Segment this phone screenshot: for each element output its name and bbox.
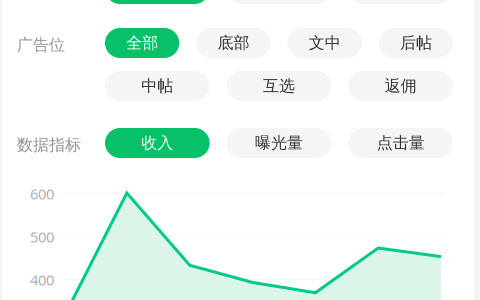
staticText: 500: [30, 227, 54, 246]
staticText: 数据指标: [17, 135, 81, 155]
button[interactable]: [348, 0, 453, 4]
staticText: 广告位: [17, 35, 65, 55]
button[interactable]: 底部: [196, 28, 270, 58]
button[interactable]: 互选: [227, 71, 331, 101]
staticText: 文中: [309, 33, 341, 53]
button[interactable]: 曝光量: [227, 128, 331, 158]
staticText: 返佣: [385, 76, 417, 96]
staticText: 底部: [217, 33, 249, 53]
staticText: 全部: [126, 33, 158, 53]
staticText: 收入: [141, 133, 173, 153]
button[interactable]: 点击量: [348, 128, 453, 158]
button[interactable]: 返佣: [348, 71, 453, 101]
button[interactable]: 中帖: [105, 71, 210, 101]
staticText: 后帖: [400, 33, 432, 53]
button[interactable]: 全部: [105, 28, 179, 58]
button[interactable]: 后帖: [379, 28, 453, 58]
staticText: 互选: [263, 76, 295, 96]
staticText: 600: [30, 184, 54, 203]
staticText: 中帖: [141, 76, 173, 96]
staticText: 曝光量: [255, 133, 303, 153]
button[interactable]: [105, 0, 210, 4]
staticText: 400: [30, 270, 54, 289]
button[interactable]: [227, 0, 331, 4]
staticText: 点击量: [377, 133, 425, 153]
button[interactable]: 文中: [287, 28, 362, 58]
button[interactable]: 收入: [105, 128, 210, 158]
